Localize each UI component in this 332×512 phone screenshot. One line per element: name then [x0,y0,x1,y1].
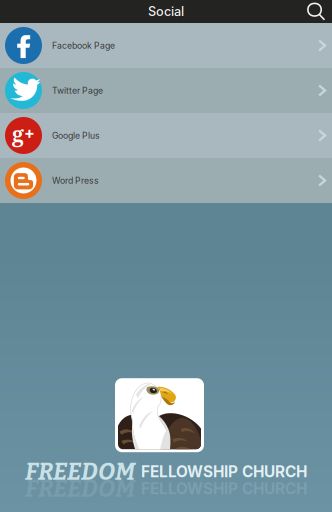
button[interactable]: Facebook Page [0,23,332,68]
button[interactable]: Twitter Page [0,68,332,113]
staticText: Social [148,4,184,19]
staticText: Facebook Page [52,40,115,51]
button[interactable]: Word Press [0,158,332,203]
button[interactable]: g [0,113,332,158]
staticText: + [24,123,35,143]
staticText: Twitter Page [52,85,103,96]
staticText: Word Press [52,175,99,186]
staticText: FELLOWSHIP CHURCH [141,462,307,481]
staticText: FELLOWSHIP CHURCH [141,479,307,498]
staticText: g [12,119,24,149]
staticText: FREEDOM [25,474,135,503]
staticText: Google Plus [52,130,100,141]
button[interactable]: Search [307,2,332,20]
staticText: FREEDOM [25,457,135,486]
